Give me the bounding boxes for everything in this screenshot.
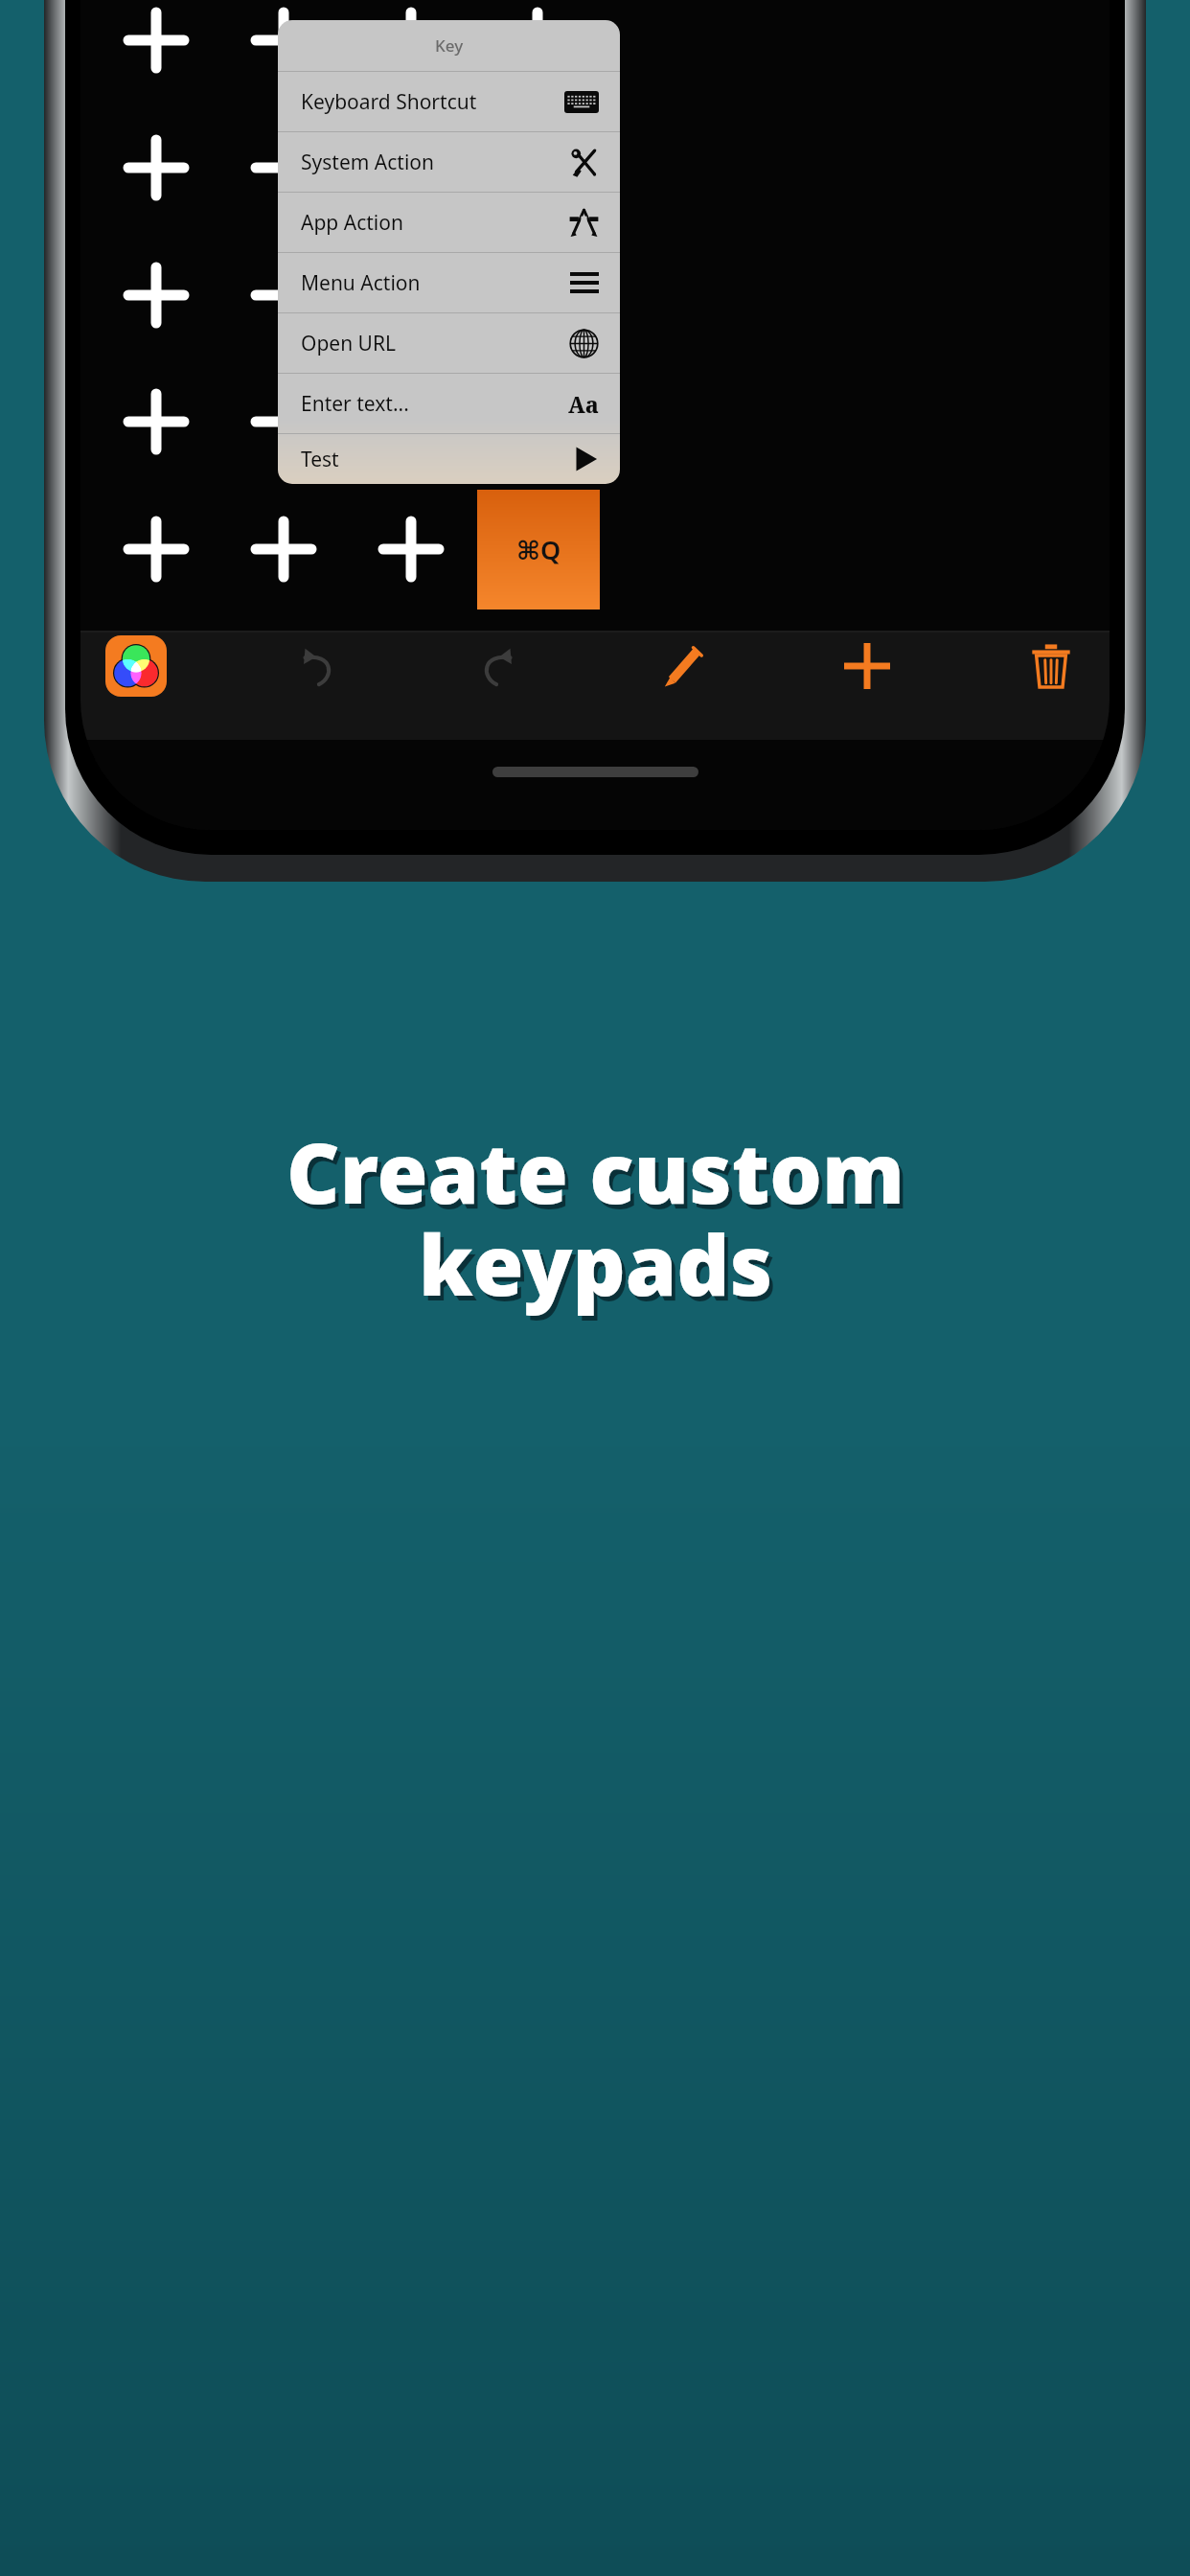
button[interactable]: App Action bbox=[278, 193, 620, 252]
button[interactable]: App colors bbox=[105, 635, 167, 697]
button[interactable]: Add key bbox=[493, 378, 582, 466]
button[interactable]: System Action bbox=[278, 132, 620, 192]
button[interactable]: Menu Action bbox=[278, 253, 620, 312]
button[interactable]: Add key bbox=[367, 378, 455, 466]
button[interactable]: Add key bbox=[112, 505, 200, 593]
staticText: Aa bbox=[568, 389, 599, 419]
staticText: Create custom keypads bbox=[286, 1115, 904, 1321]
button[interactable]: Add key bbox=[493, 0, 582, 84]
staticText: ⌘Q bbox=[516, 532, 561, 567]
button[interactable]: Enter text... bbox=[278, 374, 620, 433]
button[interactable]: Add key bbox=[240, 124, 328, 212]
button[interactable]: Add key bbox=[493, 505, 582, 593]
button[interactable]: Redo bbox=[466, 632, 533, 700]
button[interactable]: Keyboard Shortcut bbox=[278, 72, 620, 131]
button[interactable]: Test bbox=[278, 434, 620, 484]
button[interactable]: Add key bbox=[112, 124, 200, 212]
button[interactable]: Add key bbox=[112, 378, 200, 466]
button[interactable]: Open URL bbox=[278, 313, 620, 373]
button[interactable]: Undo bbox=[283, 632, 350, 700]
button[interactable]: Edit bbox=[650, 632, 717, 700]
button[interactable]: Add key bbox=[240, 0, 328, 84]
button[interactable]: Add key bbox=[493, 124, 582, 212]
button[interactable]: Delete bbox=[1018, 632, 1085, 700]
staticText: Key bbox=[435, 34, 464, 57]
button[interactable]: Add key bbox=[240, 505, 328, 593]
staticText: Create custom keypads bbox=[290, 1120, 908, 1325]
button[interactable]: Add key bbox=[112, 251, 200, 339]
staticText: Test bbox=[301, 446, 339, 473]
button[interactable]: Add key bbox=[367, 124, 455, 212]
staticText: Enter text... bbox=[301, 390, 409, 418]
button[interactable]: Add key bbox=[493, 251, 582, 339]
button[interactable]: Add bbox=[834, 632, 901, 700]
button[interactable]: Add key bbox=[367, 0, 455, 84]
button[interactable]: Add key bbox=[240, 251, 328, 339]
button[interactable]: Add key bbox=[240, 378, 328, 466]
staticText: Keyboard Shortcut bbox=[301, 88, 477, 116]
staticText: Menu Action bbox=[301, 269, 421, 297]
staticText: System Action bbox=[301, 149, 434, 176]
staticText: Open URL bbox=[301, 330, 397, 357]
button[interactable]: ⌘Q bbox=[477, 490, 600, 609]
button[interactable]: Add key bbox=[367, 505, 455, 593]
staticText: App Action bbox=[301, 209, 403, 237]
button[interactable]: Add key bbox=[112, 0, 200, 84]
button[interactable]: Add key bbox=[367, 251, 455, 339]
